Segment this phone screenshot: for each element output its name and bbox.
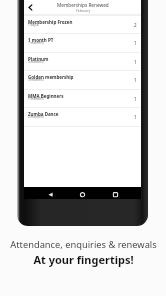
button[interactable]: 1 month PT	[24, 34, 141, 52]
staticText: At your fingertips!	[33, 252, 134, 267]
staticText: 2 month(s)	[28, 115, 44, 119]
staticText: Membership Frozen	[28, 19, 73, 25]
button[interactable]: Zumba Dance	[24, 108, 141, 126]
staticText: 1	[134, 96, 137, 102]
staticText: 2	[134, 22, 137, 28]
staticText: 1	[134, 77, 137, 83]
button[interactable]: Membership Frozen	[24, 16, 141, 34]
button[interactable]: Back	[24, 1, 37, 14]
button[interactable]: Recent apps	[110, 189, 121, 200]
button[interactable]: Platinum	[24, 53, 141, 71]
staticText: Attendance, enquiries & renewals	[10, 238, 157, 251]
button[interactable]: Home	[77, 189, 88, 200]
button[interactable]: MMA Beginners	[24, 90, 141, 108]
staticText: 1 month(s)	[28, 41, 44, 45]
staticText: Zumba Dance	[28, 111, 59, 117]
button[interactable]: Back	[45, 189, 56, 200]
staticText: MMA Beginners	[28, 93, 64, 99]
staticText: 1	[134, 40, 137, 46]
staticText: 1 day(s)	[28, 23, 40, 27]
staticText: 1	[134, 114, 137, 120]
staticText: Memberships Renewed	[57, 2, 109, 8]
staticText: 1	[134, 59, 137, 65]
staticText: 1 month PT	[28, 37, 54, 43]
staticText: Golden membership	[28, 74, 74, 80]
staticText: 3 month(s)	[28, 78, 44, 82]
button[interactable]: Golden membership	[24, 71, 141, 89]
staticText: 1 month(s)	[28, 97, 44, 101]
staticText: Platinum	[28, 56, 49, 62]
staticText: February	[76, 8, 91, 13]
staticText: 3 month(s)	[28, 60, 44, 64]
